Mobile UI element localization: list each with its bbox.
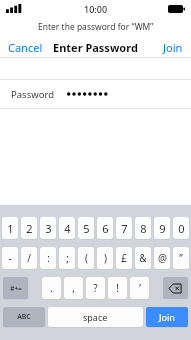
staticText: . — [50, 281, 53, 295]
staticText: Password — [11, 88, 54, 101]
staticText: 7 — [121, 221, 128, 236]
staticText: - — [8, 251, 12, 265]
button[interactable]: 9 — [154, 217, 170, 239]
button[interactable]: . — [42, 277, 61, 299]
button[interactable]: 2 — [21, 217, 37, 239]
button[interactable]: , — [64, 277, 83, 299]
staticText: 6 — [102, 221, 109, 236]
staticText: Join — [163, 40, 183, 55]
staticText: ! — [116, 281, 119, 295]
button[interactable]: Join — [163, 37, 183, 57]
button[interactable]: Backspace — [163, 277, 188, 299]
button[interactable]: 3 — [40, 217, 56, 239]
staticText: 0 — [178, 221, 185, 236]
staticText: 4 — [64, 221, 71, 236]
button[interactable]: 1 — [2, 217, 18, 239]
staticText: 2 — [26, 221, 33, 236]
button[interactable]: ) — [97, 247, 113, 269]
button[interactable]: - — [2, 247, 18, 269]
staticText: ; — [66, 251, 69, 265]
staticText: & — [139, 251, 147, 265]
button[interactable]: ABC — [3, 307, 45, 327]
button[interactable]: @ — [154, 247, 170, 269]
button[interactable]: 5 — [78, 217, 94, 239]
button[interactable]: ! — [108, 277, 127, 299]
button[interactable]: Password — [0, 80, 191, 108]
button[interactable]: ” — [173, 247, 189, 269]
staticText: Enter Password — [53, 40, 138, 55]
button[interactable]: / — [21, 247, 37, 269]
button[interactable]: & — [135, 247, 151, 269]
staticText: ) — [104, 251, 107, 265]
staticText: : — [47, 251, 50, 265]
staticText: ’ — [139, 281, 141, 295]
staticText: @ — [158, 251, 167, 265]
button[interactable]: ’ — [130, 277, 149, 299]
button[interactable]: £ — [116, 247, 132, 269]
staticText: 8 — [140, 221, 147, 236]
staticText: ? — [93, 281, 98, 295]
button[interactable]: 7 — [116, 217, 132, 239]
button[interactable]: #+= — [3, 277, 28, 299]
staticText: ” — [179, 251, 183, 265]
button[interactable]: 4 — [59, 217, 75, 239]
staticText: 5 — [83, 221, 90, 236]
button[interactable]: 6 — [97, 217, 113, 239]
staticText: Enter the password for “WM” — [38, 21, 154, 33]
button[interactable]: space — [48, 307, 143, 327]
button[interactable]: ? — [86, 277, 105, 299]
button[interactable]: Join — [146, 307, 188, 327]
button[interactable]: Cancel — [8, 37, 43, 57]
staticText: Cancel — [8, 40, 43, 55]
staticText: £ — [121, 251, 127, 265]
staticText: ABC — [17, 312, 31, 322]
staticText: 10:00 — [84, 3, 108, 15]
staticText: space — [83, 311, 108, 323]
staticText: ( — [85, 251, 88, 265]
staticText: , — [72, 281, 75, 295]
staticText: / — [27, 251, 31, 265]
staticText: 1 — [7, 221, 14, 236]
button[interactable]: 8 — [135, 217, 151, 239]
staticText: 3 — [45, 221, 52, 236]
button[interactable]: ; — [59, 247, 75, 269]
staticText: #+= — [10, 284, 22, 293]
button[interactable]: : — [40, 247, 56, 269]
staticText: Join — [159, 311, 175, 323]
staticText: 9 — [159, 221, 166, 236]
button[interactable]: 0 — [173, 217, 189, 239]
button[interactable]: ( — [78, 247, 94, 269]
